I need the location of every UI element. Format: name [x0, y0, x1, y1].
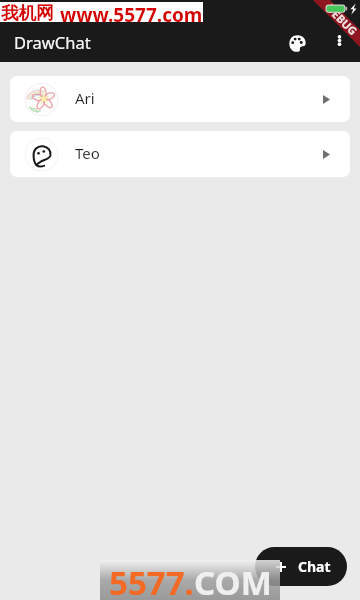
staticText: DEBUG	[323, 1, 360, 38]
button[interactable]: Ari	[10, 76, 350, 122]
staticText: DrawChat	[14, 31, 276, 53]
staticText: www.5577.com	[60, 2, 203, 22]
staticText: 我机网	[1, 2, 54, 22]
button[interactable]: Chat	[255, 547, 347, 586]
staticText: Teo	[75, 143, 100, 163]
staticText: COM	[194, 560, 272, 600]
button[interactable]: Palette	[276, 24, 318, 62]
button[interactable]: More options	[318, 24, 360, 62]
button[interactable]: Teo	[10, 131, 350, 177]
staticText: Chat	[298, 557, 331, 576]
staticText: Ari	[75, 88, 95, 108]
staticText: 5577.	[109, 560, 194, 600]
